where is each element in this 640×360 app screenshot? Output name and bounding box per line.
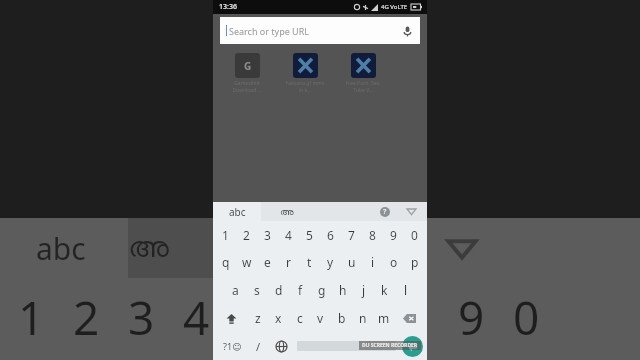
button[interactable]: 1 [215,221,236,248]
staticText: v [317,310,324,326]
button[interactable]: l [395,276,416,304]
button[interactable]: b [331,304,352,332]
button[interactable]: d [268,276,290,304]
staticText: t [307,254,312,270]
staticText: 3 [128,286,155,349]
button[interactable]: p [404,248,425,276]
staticText: s [254,282,260,298]
button[interactable]: g [311,276,332,304]
staticText: 1 [18,286,45,349]
button[interactable]: Voice search [400,24,414,38]
button[interactable]: r [278,248,299,276]
staticText: Free Porn, Sex, Tube V... [343,80,383,93]
button[interactable]: 8 [362,221,383,248]
button[interactable]: Hide keyboard [402,202,421,221]
staticText: b [338,310,346,326]
staticText: f [298,282,303,298]
staticText: 5 [306,227,313,243]
staticText: 4 [285,227,292,243]
button[interactable]: 0 [404,221,425,248]
button[interactable]: u [341,248,362,276]
staticText: c [297,310,303,326]
button[interactable]: z [247,304,268,332]
button[interactable]: c [289,304,310,332]
button[interactable]: haryana gf mms in k... [285,53,325,93]
staticText: p [411,254,419,270]
button[interactable]: t [299,248,320,276]
button[interactable]: abc [213,202,261,221]
staticText: 0 [513,286,540,349]
button[interactable]: j [353,276,374,304]
button[interactable]: 5 [299,221,320,248]
button[interactable]: h [332,276,353,304]
button[interactable]: v [310,304,331,332]
staticText: y [327,254,334,270]
button[interactable]: 9 [383,221,404,248]
staticText: x [275,310,282,326]
button[interactable]: Backspace [394,304,424,332]
staticText: 2 [243,227,250,243]
staticText: 0 [411,227,418,243]
button[interactable]: G [227,53,267,93]
button[interactable]: Space [297,341,396,351]
button[interactable]: Enter [402,336,423,357]
staticText: d [275,282,283,298]
staticText: 6 [293,286,320,349]
button[interactable]: k [374,276,395,304]
button[interactable]: Help [375,202,394,221]
staticText: 2 [73,286,100,349]
staticText: GamesKnit Download ... [227,80,267,93]
staticText: n [359,310,367,326]
button[interactable]: ?1☺ [217,332,247,360]
button[interactable]: Shift [216,304,247,332]
staticText: / [256,339,261,354]
button[interactable]: y [320,248,341,276]
button[interactable]: o [383,248,404,276]
button[interactable]: e [257,248,278,276]
button[interactable]: w [236,248,257,276]
button[interactable]: m [373,304,394,332]
staticText: e [264,254,271,270]
button[interactable]: / [247,332,269,360]
staticText: അ [280,207,294,217]
button[interactable]: 2 [236,221,257,248]
staticText: l [404,282,408,298]
staticText: w [242,254,252,270]
button[interactable]: Search or type URL [220,17,420,44]
button[interactable]: Change language [269,332,293,360]
button[interactable]: f [290,276,311,304]
staticText: 4G VoLTE [381,3,408,11]
staticText: 6 [327,227,334,243]
button[interactable]: അ [261,202,313,221]
staticText: 8 [369,227,376,243]
button[interactable]: 7 [341,221,362,248]
staticText: o [390,254,398,270]
staticText: 9 [458,286,485,349]
staticText: h [339,282,347,298]
button[interactable]: 3 [257,221,278,248]
staticText: q [222,254,230,270]
staticText: g [318,282,326,298]
button[interactable]: x [268,304,289,332]
staticText: a [232,282,239,298]
staticText: m [378,310,390,326]
button[interactable]: 6 [320,221,341,248]
button[interactable]: a [224,276,246,304]
button[interactable]: 4 [278,221,299,248]
staticText: abc [229,205,246,219]
button[interactable]: q [215,248,236,276]
button[interactable]: n [352,304,373,332]
staticText: Search or type URL [229,25,310,37]
staticText: j [362,282,366,298]
staticText: 3 [264,227,271,243]
staticText: 9 [390,227,397,243]
staticText: 4 [183,286,210,349]
staticText: 1 [222,227,229,243]
staticText: 7 [348,227,355,243]
button[interactable]: i [362,248,383,276]
button[interactable]: Free Porn, Sex, Tube V... [343,53,383,93]
staticText: 8 [403,286,430,349]
button[interactable]: s [246,276,268,304]
staticText: ? [383,207,387,217]
staticText: z [255,310,261,326]
